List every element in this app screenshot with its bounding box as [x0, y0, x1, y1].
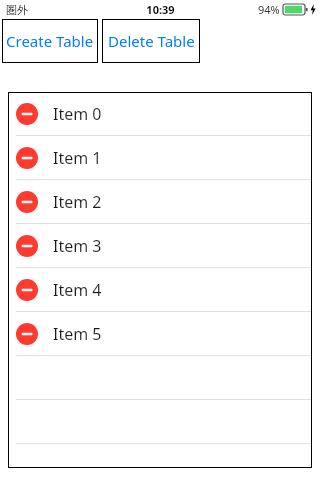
button[interactable]: Delete Item 2: [16, 191, 38, 213]
staticText: 94%: [258, 2, 280, 17]
staticText: Item 3: [53, 235, 102, 257]
staticText: Item 4: [53, 279, 102, 301]
button[interactable]: Delete Item 1: [8, 136, 312, 179]
staticText: 10:39: [146, 2, 175, 17]
staticText: Item 2: [53, 191, 102, 213]
button[interactable]: Delete Item 5: [8, 312, 312, 355]
button[interactable]: Delete Item 3: [16, 235, 38, 257]
staticText: Item 1: [53, 147, 102, 169]
button[interactable]: Delete Item 2: [8, 180, 312, 223]
button[interactable]: Create Table: [2, 19, 98, 63]
button[interactable]: Delete Item 5: [16, 323, 38, 345]
button[interactable]: Delete Item 4: [16, 279, 38, 301]
button[interactable]: Delete Table: [102, 19, 200, 63]
button[interactable]: Delete Item 0: [8, 92, 312, 135]
button[interactable]: Delete Item 3: [8, 224, 312, 267]
button[interactable]: Delete Item 4: [8, 268, 312, 311]
button[interactable]: Delete Item 0: [16, 103, 38, 125]
staticText: Item 0: [53, 103, 102, 125]
staticText: 圏外: [6, 3, 28, 17]
staticText: Item 5: [53, 323, 102, 345]
staticText: Delete Table: [108, 31, 195, 51]
staticText: Create Table: [6, 31, 94, 51]
button[interactable]: Delete Item 1: [16, 147, 38, 169]
